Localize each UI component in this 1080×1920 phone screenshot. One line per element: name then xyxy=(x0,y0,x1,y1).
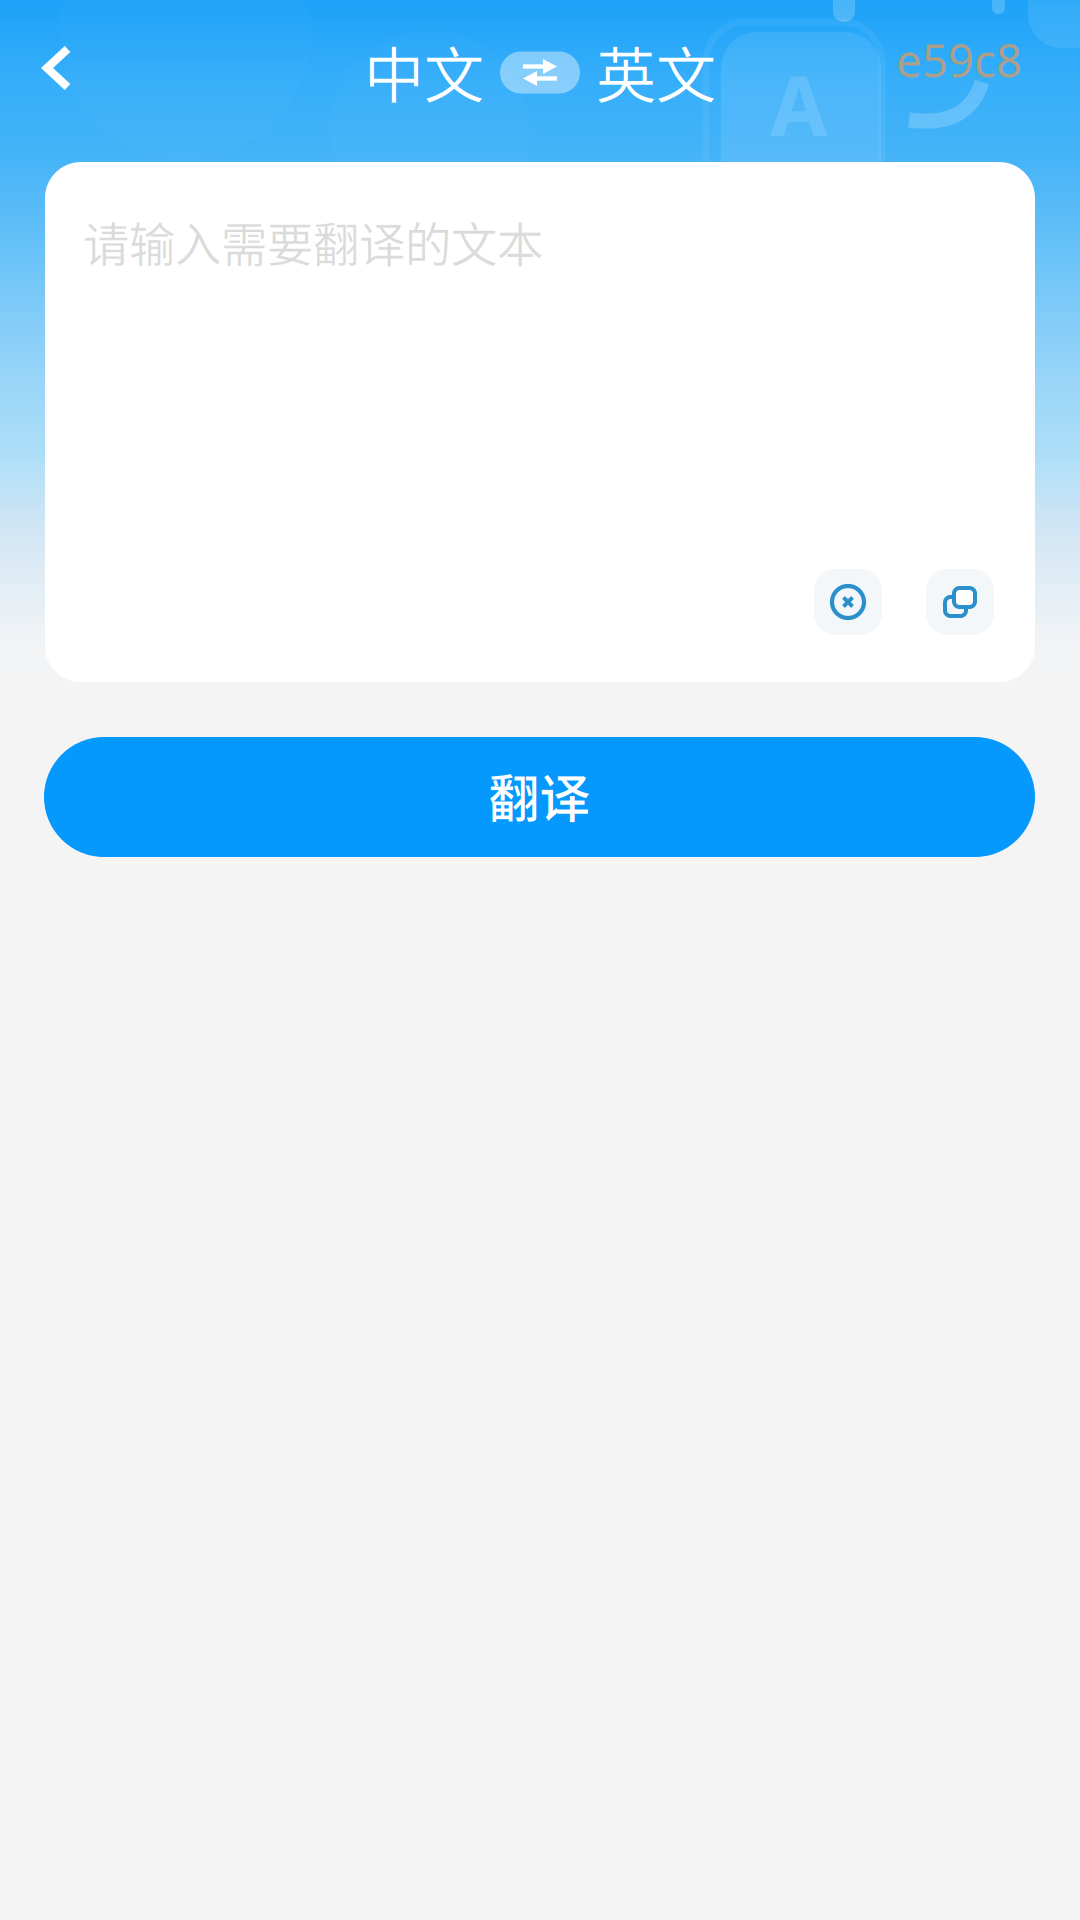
staticText: 英文 xyxy=(596,28,716,115)
staticText: 翻译 xyxy=(488,759,590,832)
staticText: 中文 xyxy=(364,28,484,115)
button[interactable]: Back xyxy=(12,20,102,116)
button[interactable]: 翻译 xyxy=(44,737,1035,857)
staticText: A xyxy=(770,49,827,159)
staticText: 请输入需要翻译的文本 xyxy=(83,208,543,275)
button[interactable]: Clear text xyxy=(814,569,882,635)
button[interactable]: Copy text xyxy=(926,569,994,635)
staticText: e59c8 xyxy=(896,30,1022,90)
button[interactable]: Swap languages xyxy=(500,51,580,93)
